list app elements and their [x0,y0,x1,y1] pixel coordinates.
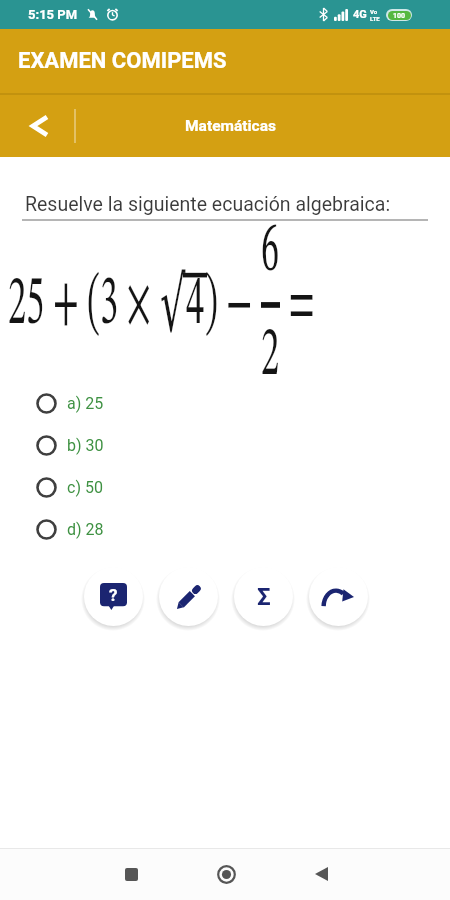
button[interactable] [159,567,218,626]
staticText: LTE [370,15,380,22]
staticText: c) 50 [67,478,103,497]
button[interactable] [125,868,138,881]
staticText: a) 25 [67,394,104,413]
staticText: Vo [370,8,378,15]
button[interactable] [22,108,58,144]
staticText: EXAMEN COMIPEMS [18,48,227,74]
button[interactable] [215,863,237,885]
staticText: 2 [261,321,280,391]
staticText: √ [160,260,186,350]
button[interactable]: b) 30 [36,424,104,466]
staticText: Σ [257,583,271,611]
staticText: 25 + (3 × [8,270,160,340]
staticText: ? [109,585,118,605]
staticText: b) 30 [67,436,104,455]
button[interactable]: c) 50 [36,466,103,508]
staticText: 4G [353,8,367,21]
button[interactable]: Σ [234,567,293,626]
button[interactable]: ? [84,567,143,626]
staticText: ) − [205,270,261,340]
button[interactable]: a) 25 [36,382,104,424]
button[interactable] [309,567,368,626]
button[interactable]: d) 28 [36,508,104,550]
staticText: 5:15 PM [28,7,78,22]
staticText: = [280,270,315,340]
staticText: Matemáticas [185,117,276,135]
staticText: 4 [186,270,205,340]
staticText: 100 [393,12,406,20]
staticText: d) 28 [67,520,104,539]
staticText: Resuelve la siguiente ecuación algebraic… [25,193,391,216]
staticText: 6 [261,217,280,287]
button[interactable] [315,867,328,881]
